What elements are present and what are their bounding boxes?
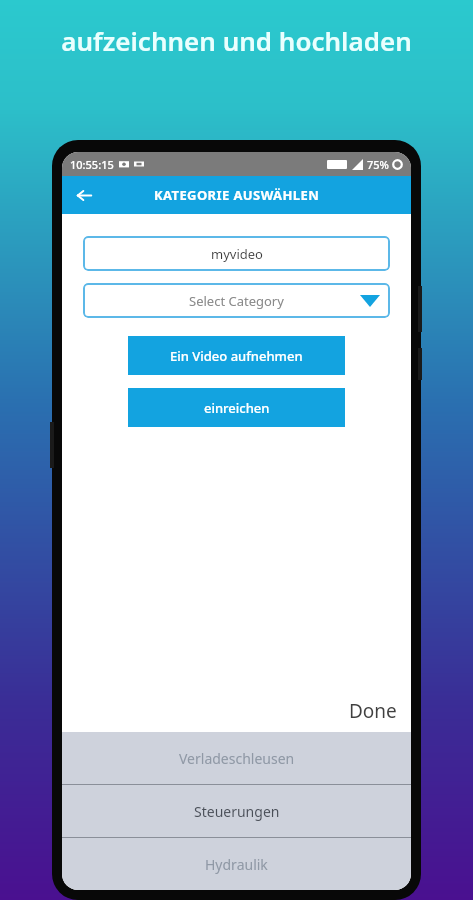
staticText: KATEGORIE AUSWÄHLEN <box>154 186 320 204</box>
staticText: Done <box>349 698 397 724</box>
button[interactable]: einreichen <box>128 388 345 427</box>
staticText: einreichen <box>204 399 270 417</box>
staticText: 75% <box>367 157 389 172</box>
staticText: Verladeschleusen <box>179 749 295 768</box>
staticText: Hydraulik <box>205 855 268 874</box>
button[interactable]: Steuerungen <box>62 785 411 837</box>
staticText: myvideo <box>211 245 263 263</box>
button[interactable]: Verladeschleusen <box>62 732 411 784</box>
button[interactable]: Ein Video aufnehmen <box>128 336 345 375</box>
staticText: Ein Video aufnehmen <box>170 347 303 365</box>
button[interactable]: Select Category <box>83 283 390 318</box>
button[interactable]: Hydraulik <box>62 838 411 890</box>
button[interactable]: Back <box>68 179 100 211</box>
staticText: 10:55:15 <box>70 157 114 172</box>
staticText: aufzeichnen und hochladen <box>61 23 412 58</box>
staticText: Steuerungen <box>194 802 280 821</box>
staticText: Select Category <box>189 292 284 310</box>
button[interactable]: myvideo <box>83 236 390 271</box>
button[interactable]: Done <box>343 694 403 728</box>
